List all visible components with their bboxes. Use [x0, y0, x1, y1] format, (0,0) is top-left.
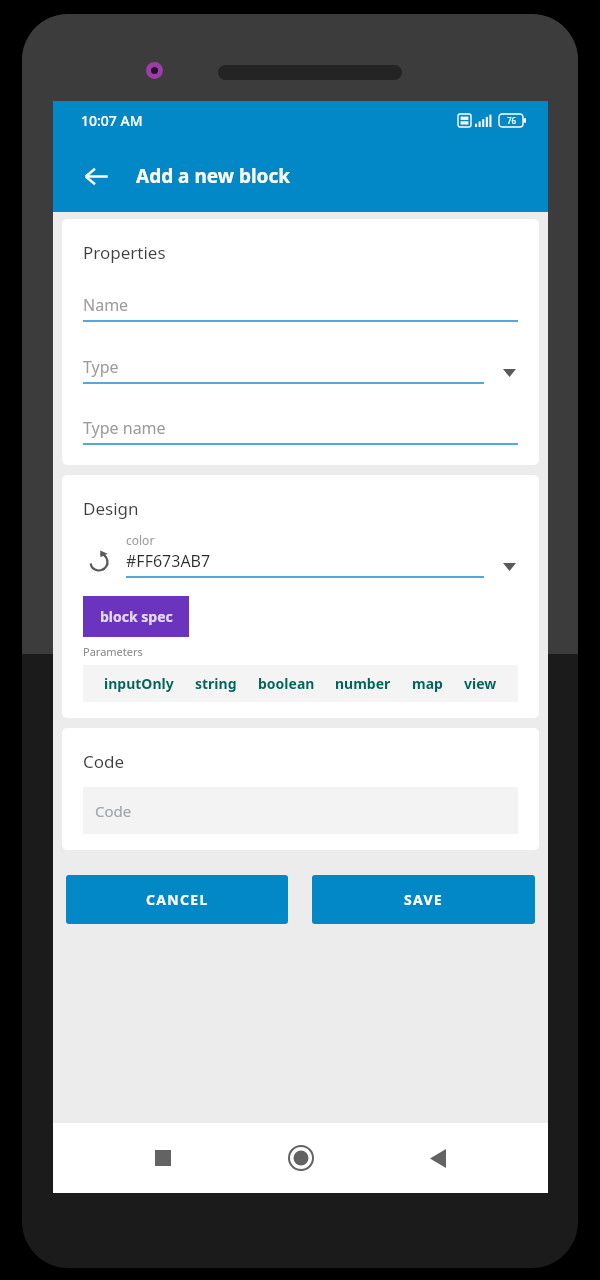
button[interactable]: Back	[73, 153, 119, 199]
button[interactable]: SAVE	[312, 875, 535, 924]
staticText: Type name	[83, 417, 166, 439]
staticText: color	[126, 532, 155, 548]
button[interactable]: block spec	[83, 596, 189, 637]
button[interactable]: boolean	[258, 674, 315, 693]
staticText: 76	[507, 115, 517, 126]
button[interactable]: string	[195, 674, 237, 693]
button[interactable]: map	[412, 674, 443, 693]
staticText: #FF673AB7	[126, 550, 211, 572]
button[interactable]: Back	[411, 1131, 465, 1185]
staticText: Name	[83, 294, 129, 316]
staticText: Design	[83, 497, 139, 520]
button[interactable]: color	[126, 532, 518, 578]
staticText: inputOnly	[104, 674, 174, 693]
button[interactable]: Home	[274, 1131, 328, 1185]
staticText: number	[335, 674, 391, 693]
staticText: map	[412, 674, 443, 693]
button[interactable]: Recent apps	[136, 1131, 190, 1185]
staticText: 10:07 AM	[81, 111, 143, 130]
staticText: Code	[83, 750, 125, 773]
button[interactable]: Regenerate color	[83, 546, 115, 578]
staticText: Code	[95, 801, 132, 821]
staticText: block spec	[100, 607, 173, 626]
staticText: string	[195, 674, 237, 693]
button[interactable]: CANCEL	[66, 875, 288, 924]
button[interactable]: Code	[83, 787, 518, 834]
staticText: Add a new block	[136, 163, 291, 189]
staticText: CANCEL	[146, 890, 209, 909]
staticText: Type	[83, 356, 119, 378]
button[interactable]: Name	[83, 294, 518, 322]
staticText: view	[464, 674, 497, 693]
button[interactable]: inputOnly	[104, 674, 174, 693]
button[interactable]: Type	[83, 356, 518, 384]
button[interactable]: Type name	[83, 417, 518, 445]
staticText: Properties	[83, 241, 166, 264]
staticText: Parameters	[83, 644, 143, 659]
staticText: boolean	[258, 674, 315, 693]
button[interactable]: number	[335, 674, 391, 693]
staticText: SAVE	[404, 890, 443, 909]
button[interactable]: view	[464, 674, 497, 693]
